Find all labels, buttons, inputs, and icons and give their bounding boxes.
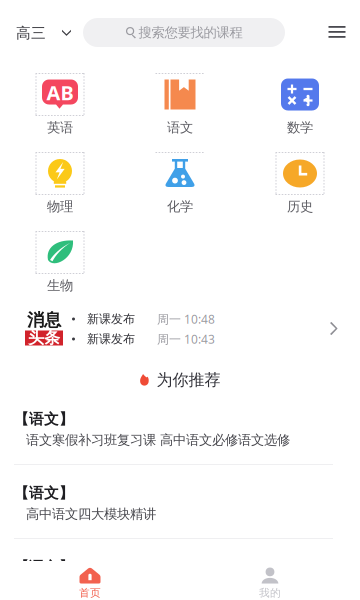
staticText: 语文 [167,119,193,136]
staticText: 高三 [16,24,46,42]
staticText: 【语文】 [14,410,74,428]
staticText: 消息 [27,309,61,331]
staticText: 数学 [287,119,313,136]
staticText: 高中语文知识点汇总 [26,580,143,596]
staticText: 为你推荐 [156,370,220,390]
button[interactable]: 历史 [240,152,360,213]
staticText: 英语 [47,119,73,136]
staticText: 周一 10:48 [157,311,215,327]
button[interactable]: 消息 [0,0,360,40]
staticText: 【语文】 [14,558,74,576]
button[interactable]: 化学 [120,152,240,213]
staticText: 高中语文四大模块精讲 [26,506,156,522]
staticText: 历史 [287,198,313,215]
button[interactable]: 高三 [0,0,85,44]
staticText: AB [46,79,73,106]
button[interactable]: 生物 [0,231,120,292]
staticText: 新课发布 [87,312,135,326]
button[interactable]: 【语文】 [0,547,360,600]
staticText: 【语文】 [14,484,74,502]
staticText: 搜索您要找的课程 [138,24,242,41]
button[interactable]: 首页 [0,566,180,600]
staticText: 首页 [79,586,101,599]
button[interactable]: Menu [0,0,44,44]
staticText: 语文寒假补习班复习课 高中语文必修语文选修 [26,432,290,448]
button[interactable]: 物理 [0,152,120,213]
button[interactable]: 语文 [120,73,240,134]
staticText: 生物 [47,277,73,294]
button[interactable]: 数学 [240,73,360,134]
staticText: 头条 [28,328,60,348]
button[interactable]: 搜索您要找的课程 [0,0,202,29]
staticText: 新课发布 [87,332,135,346]
staticText: 物理 [47,198,73,215]
staticText: 我的 [259,586,281,599]
staticText: 化学 [167,198,193,215]
button[interactable]: 【语文】 [0,399,360,473]
button[interactable]: 【语文】 [0,473,360,547]
staticText: 周一 10:43 [157,331,215,347]
button[interactable]: 我的 [180,566,360,600]
button[interactable]: AB [0,73,120,134]
